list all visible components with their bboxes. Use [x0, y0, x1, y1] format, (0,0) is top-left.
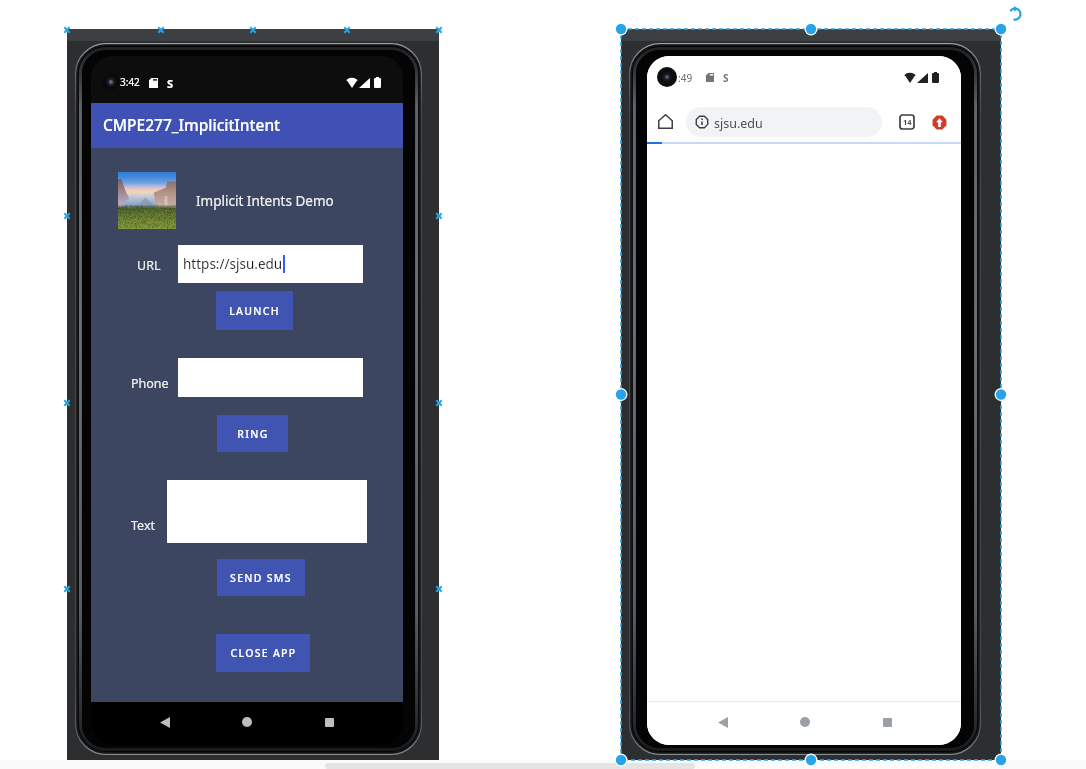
- button[interactable]: Update Chrome: [926, 109, 952, 135]
- button[interactable]: Home: [791, 708, 819, 736]
- staticText: Implicit Intents Demo: [196, 192, 334, 210]
- staticText: Text: [131, 517, 156, 534]
- staticText: SEND SMS: [230, 571, 292, 585]
- staticText: 14: [903, 117, 912, 127]
- button[interactable]: Recents: [315, 708, 343, 736]
- staticText: CMPE277_ImplicitIntent: [103, 114, 281, 135]
- button[interactable]: LAUNCH: [216, 291, 293, 330]
- staticText: :49: [678, 71, 693, 85]
- button[interactable]: sjsu.edu: [686, 107, 882, 137]
- button[interactable]: CLOSE APP: [216, 634, 310, 672]
- button[interactable]: Tabs: [894, 109, 920, 135]
- staticText: URL: [137, 257, 161, 274]
- button[interactable]: Recents: [873, 708, 901, 736]
- button[interactable]: RING: [217, 415, 288, 452]
- staticText: RING: [237, 427, 269, 441]
- staticText: S: [167, 76, 174, 91]
- staticText: CLOSE APP: [230, 646, 297, 660]
- staticText: LAUNCH: [229, 304, 280, 318]
- staticText: sjsu.edu: [714, 115, 763, 132]
- button[interactable]: https://sjsu.edu: [178, 245, 363, 283]
- button[interactable]: Home: [652, 108, 679, 135]
- staticText: S: [723, 71, 729, 85]
- staticText: https://sjsu.edu: [183, 255, 283, 273]
- button[interactable]: SEND SMS: [217, 559, 305, 596]
- staticText: Phone: [131, 375, 169, 392]
- button[interactable]: Back: [709, 708, 737, 736]
- button[interactable]: Home: [233, 708, 261, 736]
- staticText: 3:42: [120, 75, 140, 89]
- button[interactable]: Back: [151, 708, 179, 736]
